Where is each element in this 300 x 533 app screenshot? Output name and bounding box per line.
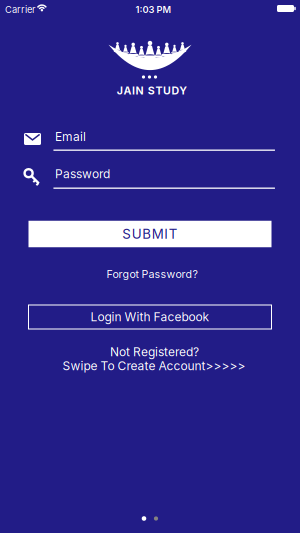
button[interactable] — [23, 162, 275, 190]
staticText: SUBMIT — [122, 226, 178, 242]
button[interactable]: Forgot Password? — [106, 268, 197, 280]
staticText: Email — [55, 130, 86, 144]
staticText: Not Registered? — [110, 345, 199, 359]
button[interactable]: Login With Facebook — [28, 305, 271, 329]
staticText: Login With Facebook — [90, 310, 209, 324]
staticText: 1:03 PM — [135, 4, 171, 15]
staticText: Swipe To Create Account>>>>> — [62, 359, 245, 373]
staticText: JAIN STUDY — [117, 84, 187, 97]
staticText: Carrier — [5, 4, 36, 15]
button[interactable]: SUBMIT — [28, 221, 271, 247]
staticText: Password — [55, 167, 110, 181]
button[interactable] — [23, 125, 275, 153]
staticText: Forgot Password? — [106, 268, 197, 280]
